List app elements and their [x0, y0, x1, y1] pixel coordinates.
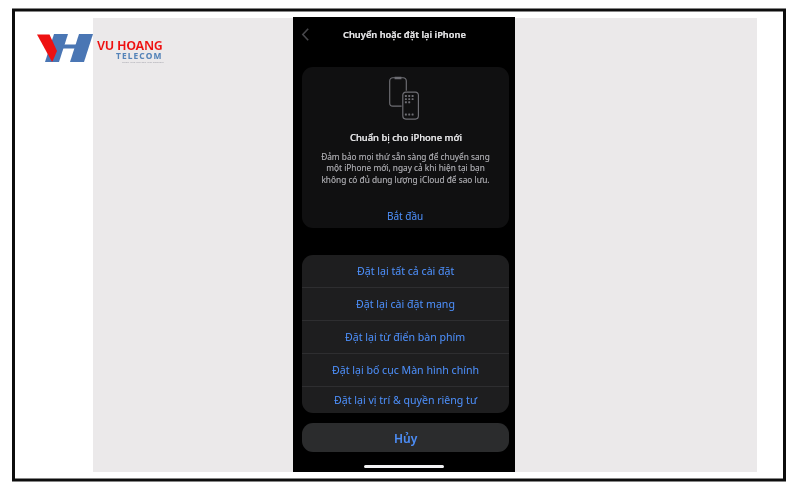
- button[interactable]: Đặt lại vị trí & quyền riêng tư: [302, 387, 509, 413]
- staticText: Đặt lại tất cả cài đặt: [357, 264, 455, 278]
- button[interactable]: Đặt lại cài đặt mạng: [302, 288, 509, 320]
- staticText: Smart Your Life and Your Business: [122, 60, 164, 63]
- button[interactable]: Bắt đầu: [302, 206, 509, 226]
- staticText: Đặt lại từ điển bàn phím: [345, 330, 466, 344]
- staticText: Bắt đầu: [387, 209, 424, 223]
- staticText: Đảm bảo mọi thứ sẵn sàng để chuyển sang …: [302, 151, 509, 186]
- staticText: VU HOANG: [97, 37, 163, 54]
- staticText: Đặt lại bố cục Màn hình chính: [332, 363, 480, 377]
- button[interactable]: Hủy: [302, 423, 509, 452]
- button[interactable]: Đặt lại bố cục Màn hình chính: [302, 354, 509, 386]
- staticText: Hủy: [394, 430, 418, 446]
- staticText: Đặt lại vị trí & quyền riêng tư: [334, 393, 478, 407]
- staticText: TELECOM: [116, 50, 163, 61]
- button[interactable]: Back: [294, 22, 316, 46]
- staticText: Chuẩn bị cho iPhone mới: [350, 131, 462, 144]
- staticText: Chuyển hoặc đặt lại iPhone: [343, 28, 466, 41]
- staticText: Đặt lại cài đặt mạng: [356, 297, 455, 311]
- button[interactable]: Đặt lại từ điển bàn phím: [302, 321, 509, 353]
- button[interactable]: Đặt lại tất cả cài đặt: [302, 255, 509, 287]
